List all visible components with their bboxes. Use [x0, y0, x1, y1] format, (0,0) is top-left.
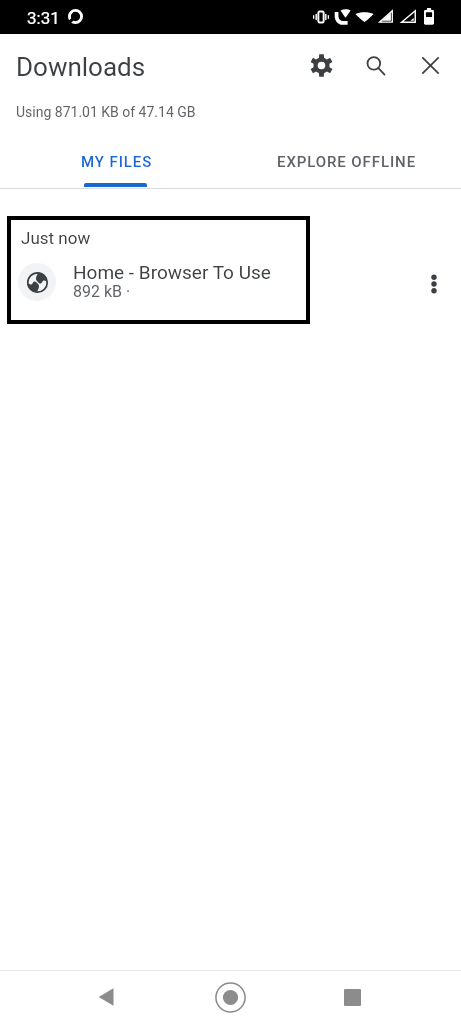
- staticText: 892 kB ·: [73, 282, 131, 301]
- staticText: EXPLORE OFFLINE: [277, 153, 417, 171]
- button[interactable]: MY FILES: [0, 141, 230, 189]
- staticText: 3:31: [27, 8, 60, 28]
- staticText: Home - Browser To Use: [73, 261, 271, 283]
- button[interactable]: Search: [351, 41, 399, 89]
- button[interactable]: Home: [206, 973, 254, 1021]
- button[interactable]: Close: [406, 41, 454, 89]
- button[interactable]: Recents: [328, 973, 376, 1021]
- button[interactable]: More options: [414, 264, 454, 304]
- button[interactable]: EXPLORE OFFLINE: [230, 141, 461, 189]
- staticText: Just now: [21, 228, 91, 248]
- staticText: Using 871.01 KB of 47.14 GB: [16, 104, 196, 120]
- button[interactable]: Settings: [297, 41, 345, 89]
- staticText: MY FILES: [81, 153, 153, 171]
- button[interactable]: Back: [83, 973, 131, 1021]
- button[interactable]: Home - Browser To Use: [0, 255, 461, 313]
- staticText: Downloads: [16, 52, 146, 82]
